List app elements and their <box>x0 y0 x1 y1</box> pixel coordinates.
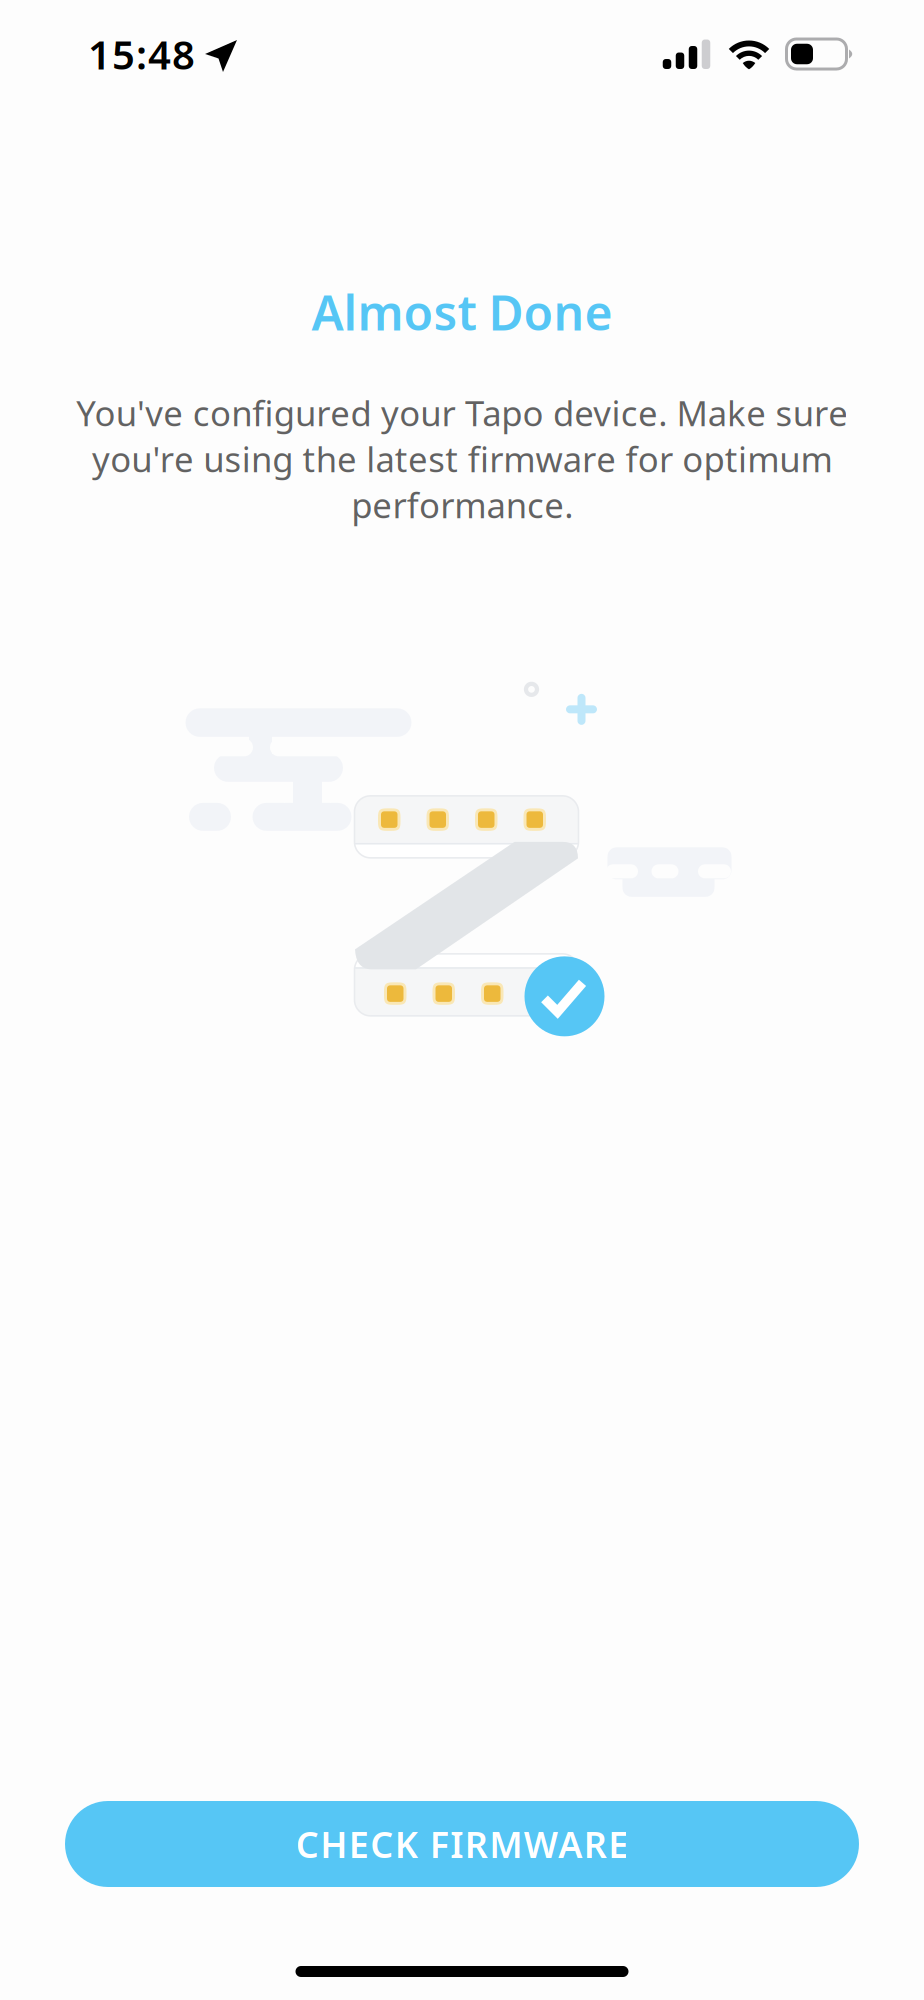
button[interactable]: CHECK FIRMWARE <box>65 1801 859 1887</box>
staticText: You've configured your Tapo device. Make… <box>76 390 848 528</box>
staticText: 15:48 <box>88 27 195 80</box>
staticText: CHECK FIRMWARE <box>296 1820 628 1868</box>
staticText: Almost Done <box>311 280 612 344</box>
